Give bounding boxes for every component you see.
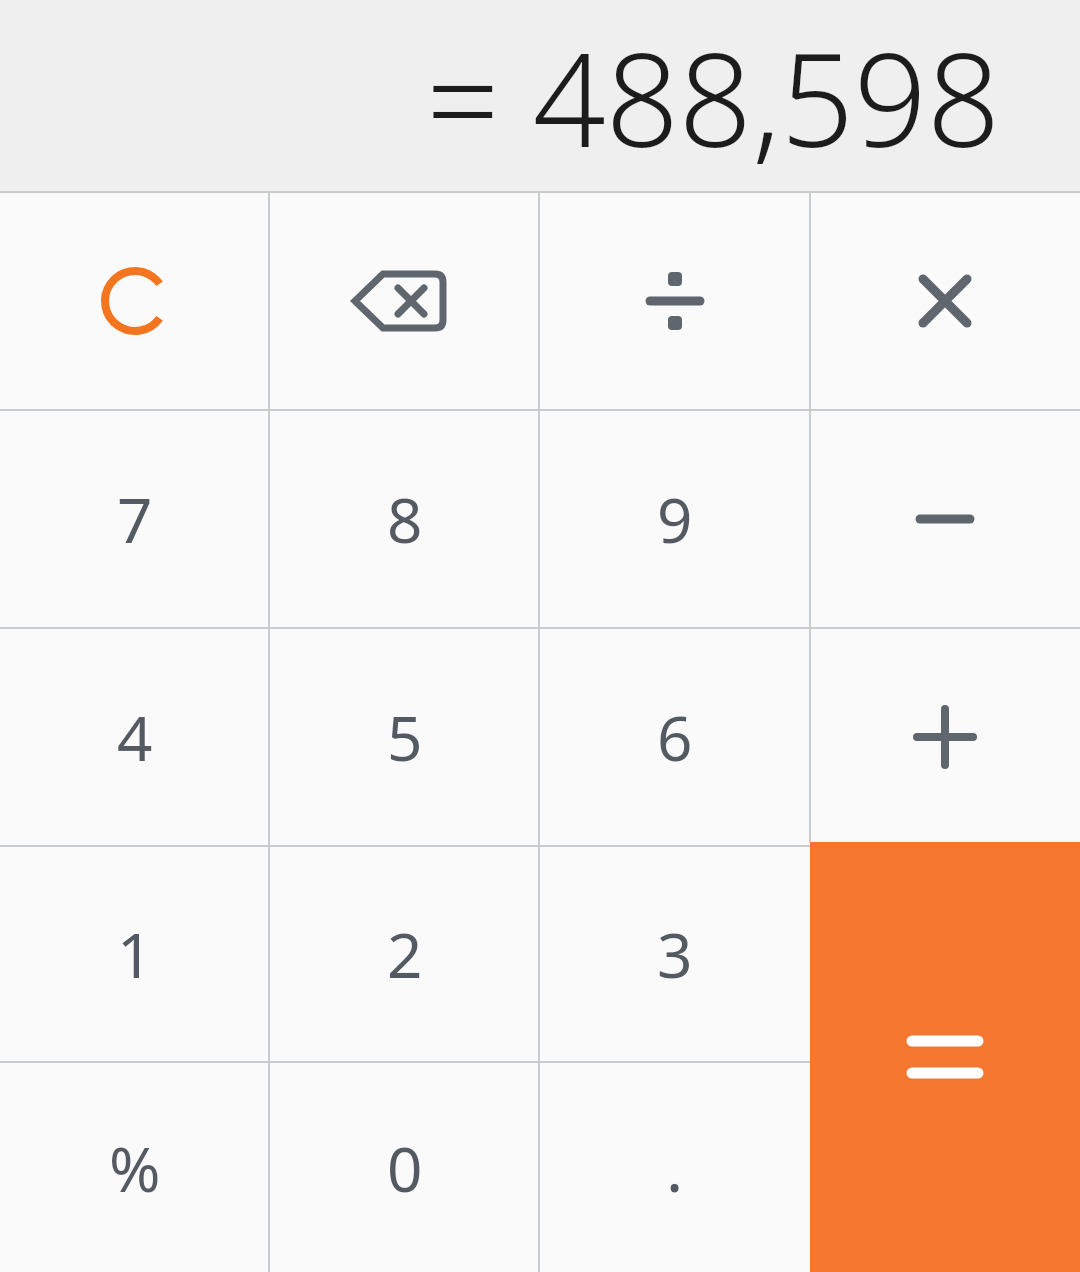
staticText: 5 <box>387 695 423 779</box>
staticText: 1 <box>117 912 153 996</box>
staticText: % <box>109 1126 161 1210</box>
button[interactable]: Multiply <box>810 193 1080 409</box>
button[interactable]: 2 <box>270 847 540 1061</box>
staticText: 7 <box>117 477 153 561</box>
button[interactable]: 4 <box>0 629 270 845</box>
staticText: 3 <box>657 912 693 996</box>
staticText: 8 <box>387 477 423 561</box>
button[interactable]: Equals <box>810 842 1080 1272</box>
button[interactable]: Clear <box>0 193 270 409</box>
staticText: 0 <box>387 1126 423 1210</box>
button[interactable]: 9 <box>540 411 810 627</box>
button[interactable]: 5 <box>270 629 540 845</box>
button[interactable]: Divide <box>540 193 810 409</box>
button[interactable]: % <box>0 1063 270 1272</box>
button[interactable]: Plus <box>810 629 1080 845</box>
button[interactable]: Backspace <box>270 193 540 409</box>
button[interactable]: 3 <box>540 847 810 1061</box>
staticText: = 488,598 <box>426 10 1000 184</box>
staticText: 2 <box>387 912 423 996</box>
button[interactable]: 6 <box>540 629 810 845</box>
button[interactable]: . <box>540 1063 810 1272</box>
staticText: 4 <box>117 695 153 779</box>
staticText: . <box>666 1124 684 1211</box>
button[interactable]: Minus <box>810 411 1080 627</box>
button[interactable]: 8 <box>270 411 540 627</box>
staticText: 9 <box>657 477 693 561</box>
button[interactable]: 7 <box>0 411 270 627</box>
button[interactable]: 1 <box>0 847 270 1061</box>
button[interactable]: 0 <box>270 1063 540 1272</box>
staticText: 6 <box>657 695 693 779</box>
